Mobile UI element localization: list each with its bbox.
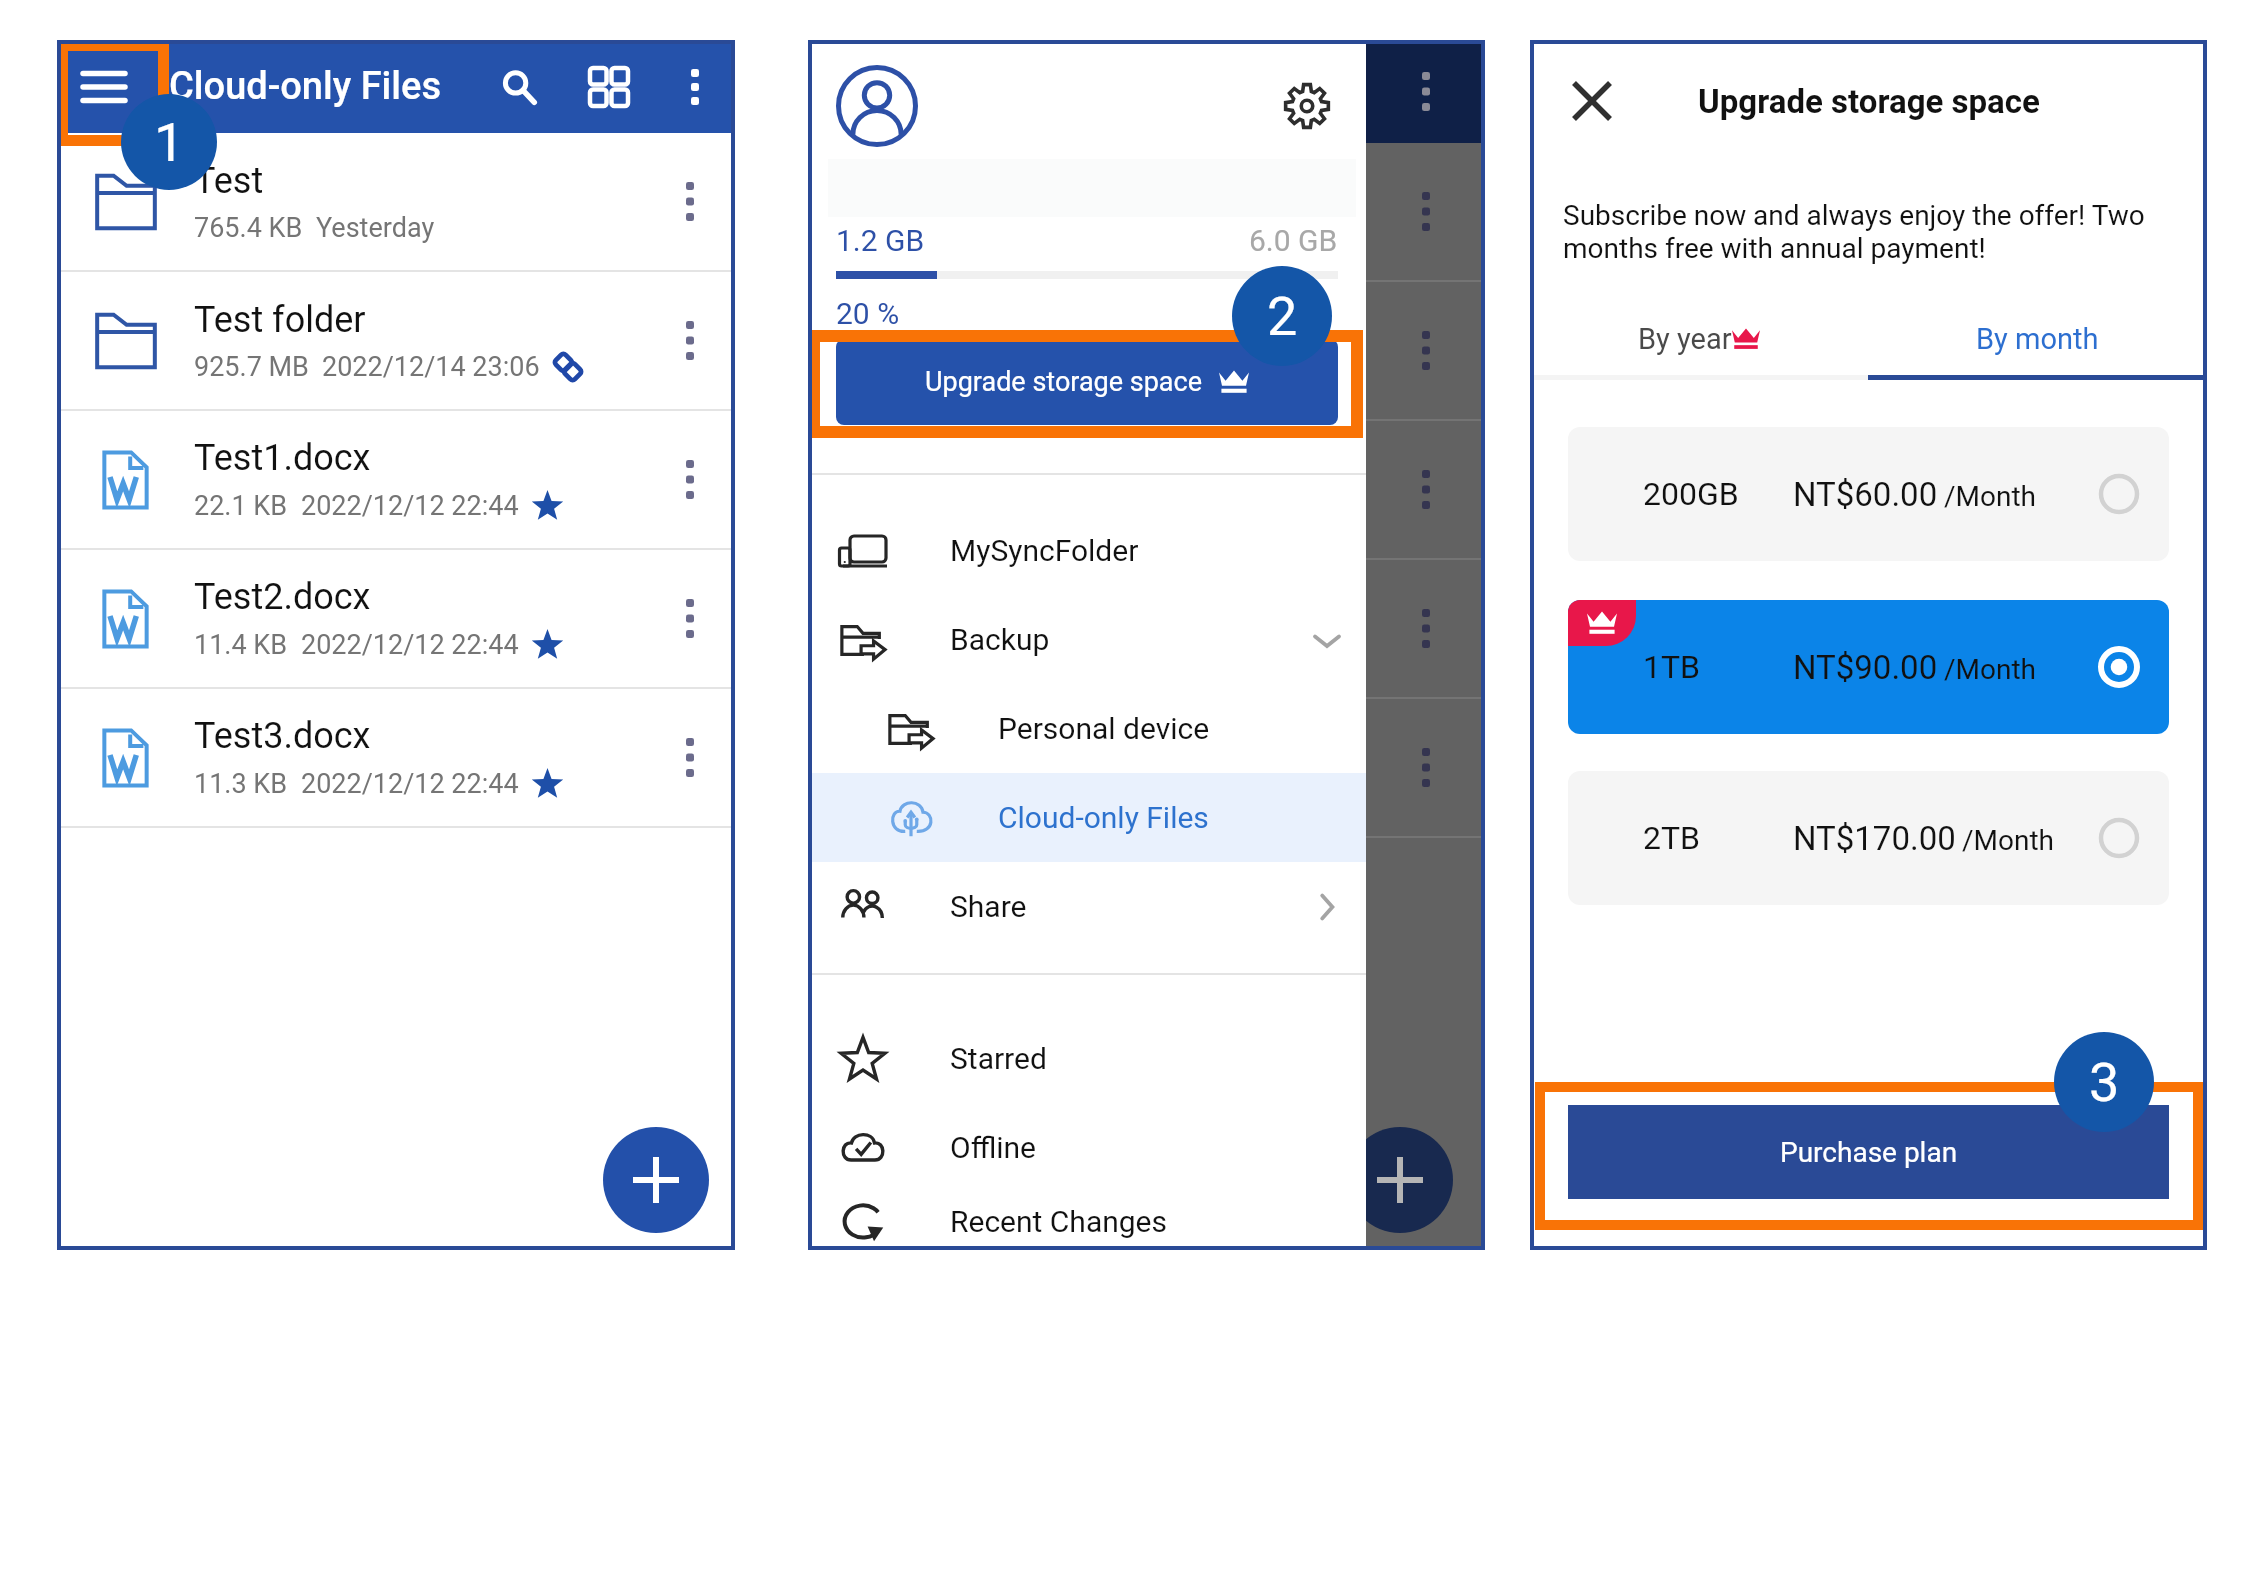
button[interactable]: Search [474, 40, 564, 133]
staticText: 6.0 GB [1249, 223, 1338, 258]
button[interactable]: Cloud-only Files [808, 773, 1366, 862]
staticText: Subscribe now and always enjoy the offer… [1563, 199, 2191, 265]
staticText: Yesterday [316, 212, 435, 244]
staticText: Share [950, 889, 1027, 924]
staticText: 2TB [1643, 819, 1701, 857]
staticText: 2 [1267, 285, 1298, 348]
button[interactable]: Upgrade storage space [836, 339, 1338, 425]
staticText: 22.1 KB [194, 490, 288, 522]
button[interactable]: More options [645, 689, 735, 826]
staticText: Offline [950, 1130, 1037, 1165]
staticText: NT$170.00 [1793, 819, 1956, 858]
staticText: NT$90.00 [1793, 648, 1938, 687]
button[interactable]: 1TB [1568, 600, 2169, 734]
staticText: Purchase plan [1780, 1136, 1958, 1169]
button[interactable]: Personal device [808, 684, 1366, 773]
staticText: Cloud-only Files [169, 64, 442, 109]
button[interactable]: More options [654, 40, 735, 133]
staticText: Test2.docx [194, 576, 371, 618]
button[interactable]: 2TB [1568, 771, 2169, 905]
button[interactable]: By month [1868, 303, 2207, 375]
staticText: /Month [1962, 824, 2055, 857]
staticText: 20 % [836, 296, 900, 331]
staticText: Backup [950, 622, 1050, 657]
button[interactable]: Starred [808, 1014, 1366, 1103]
staticText: 2022/12/12 22:44 [301, 768, 519, 800]
button[interactable]: More options [645, 411, 735, 548]
staticText: Test [194, 160, 264, 202]
button[interactable]: MySyncFolder [808, 506, 1366, 595]
staticText: 2022/12/14 23:06 [322, 351, 540, 383]
staticText: NT$60.00 [1793, 475, 1938, 514]
button[interactable]: Test folder [57, 272, 735, 409]
staticText: Test3.docx [194, 715, 371, 757]
staticText: Personal device [998, 711, 1210, 746]
button[interactable]: More options [645, 550, 735, 687]
button[interactable]: Grid view [564, 40, 654, 133]
button[interactable]: Recent Changes [808, 1192, 1366, 1250]
staticText: 765.4 KB [194, 212, 303, 244]
staticText: 11.4 KB [194, 629, 288, 661]
staticText: 1.2 GB [836, 223, 925, 258]
staticText: 3 [2089, 1051, 2120, 1114]
staticText: 1TB [1643, 648, 1701, 686]
button[interactable]: Add [603, 1127, 709, 1233]
button[interactable]: Share [808, 862, 1366, 951]
staticText: Starred [950, 1041, 1047, 1076]
staticText: MySyncFolder [950, 533, 1139, 568]
staticText: Upgrade storage space [925, 366, 1203, 398]
staticText: 1 [154, 111, 185, 174]
staticText: /Month [1944, 480, 2037, 513]
button[interactable]: Settings [1276, 75, 1338, 137]
button[interactable]: 200GB [1568, 427, 2169, 561]
button[interactable]: Test1.docx [57, 411, 735, 548]
button[interactable]: Test3.docx [57, 689, 735, 826]
staticText: 2022/12/12 22:44 [301, 490, 519, 522]
button[interactable]: Close [1554, 63, 1630, 139]
staticText: 2022/12/12 22:44 [301, 629, 519, 661]
staticText: /Month [1944, 653, 2037, 686]
staticText: 200GB [1643, 475, 1739, 513]
button[interactable]: Test2.docx [57, 550, 735, 687]
staticText: Cloud-only Files [998, 800, 1209, 835]
staticText: 925.7 MB [194, 351, 309, 383]
button[interactable]: More options [645, 133, 735, 270]
staticText: By year [1638, 322, 1732, 356]
button[interactable]: More options [645, 272, 735, 409]
button[interactable]: Offline [808, 1103, 1366, 1192]
staticText: Test1.docx [194, 437, 371, 479]
button[interactable]: Backup [808, 595, 1366, 684]
button[interactable]: Menu [57, 40, 150, 133]
staticText: Upgrade storage space [1698, 82, 2040, 121]
staticText: 11.3 KB [194, 768, 288, 800]
staticText: Recent Changes [950, 1204, 1168, 1239]
staticText: By month [1976, 322, 2099, 356]
button[interactable]: Purchase plan [1568, 1105, 2169, 1199]
button[interactable]: Test [57, 133, 735, 270]
button[interactable]: By year [1530, 303, 1868, 375]
staticText: Test folder [194, 299, 366, 341]
